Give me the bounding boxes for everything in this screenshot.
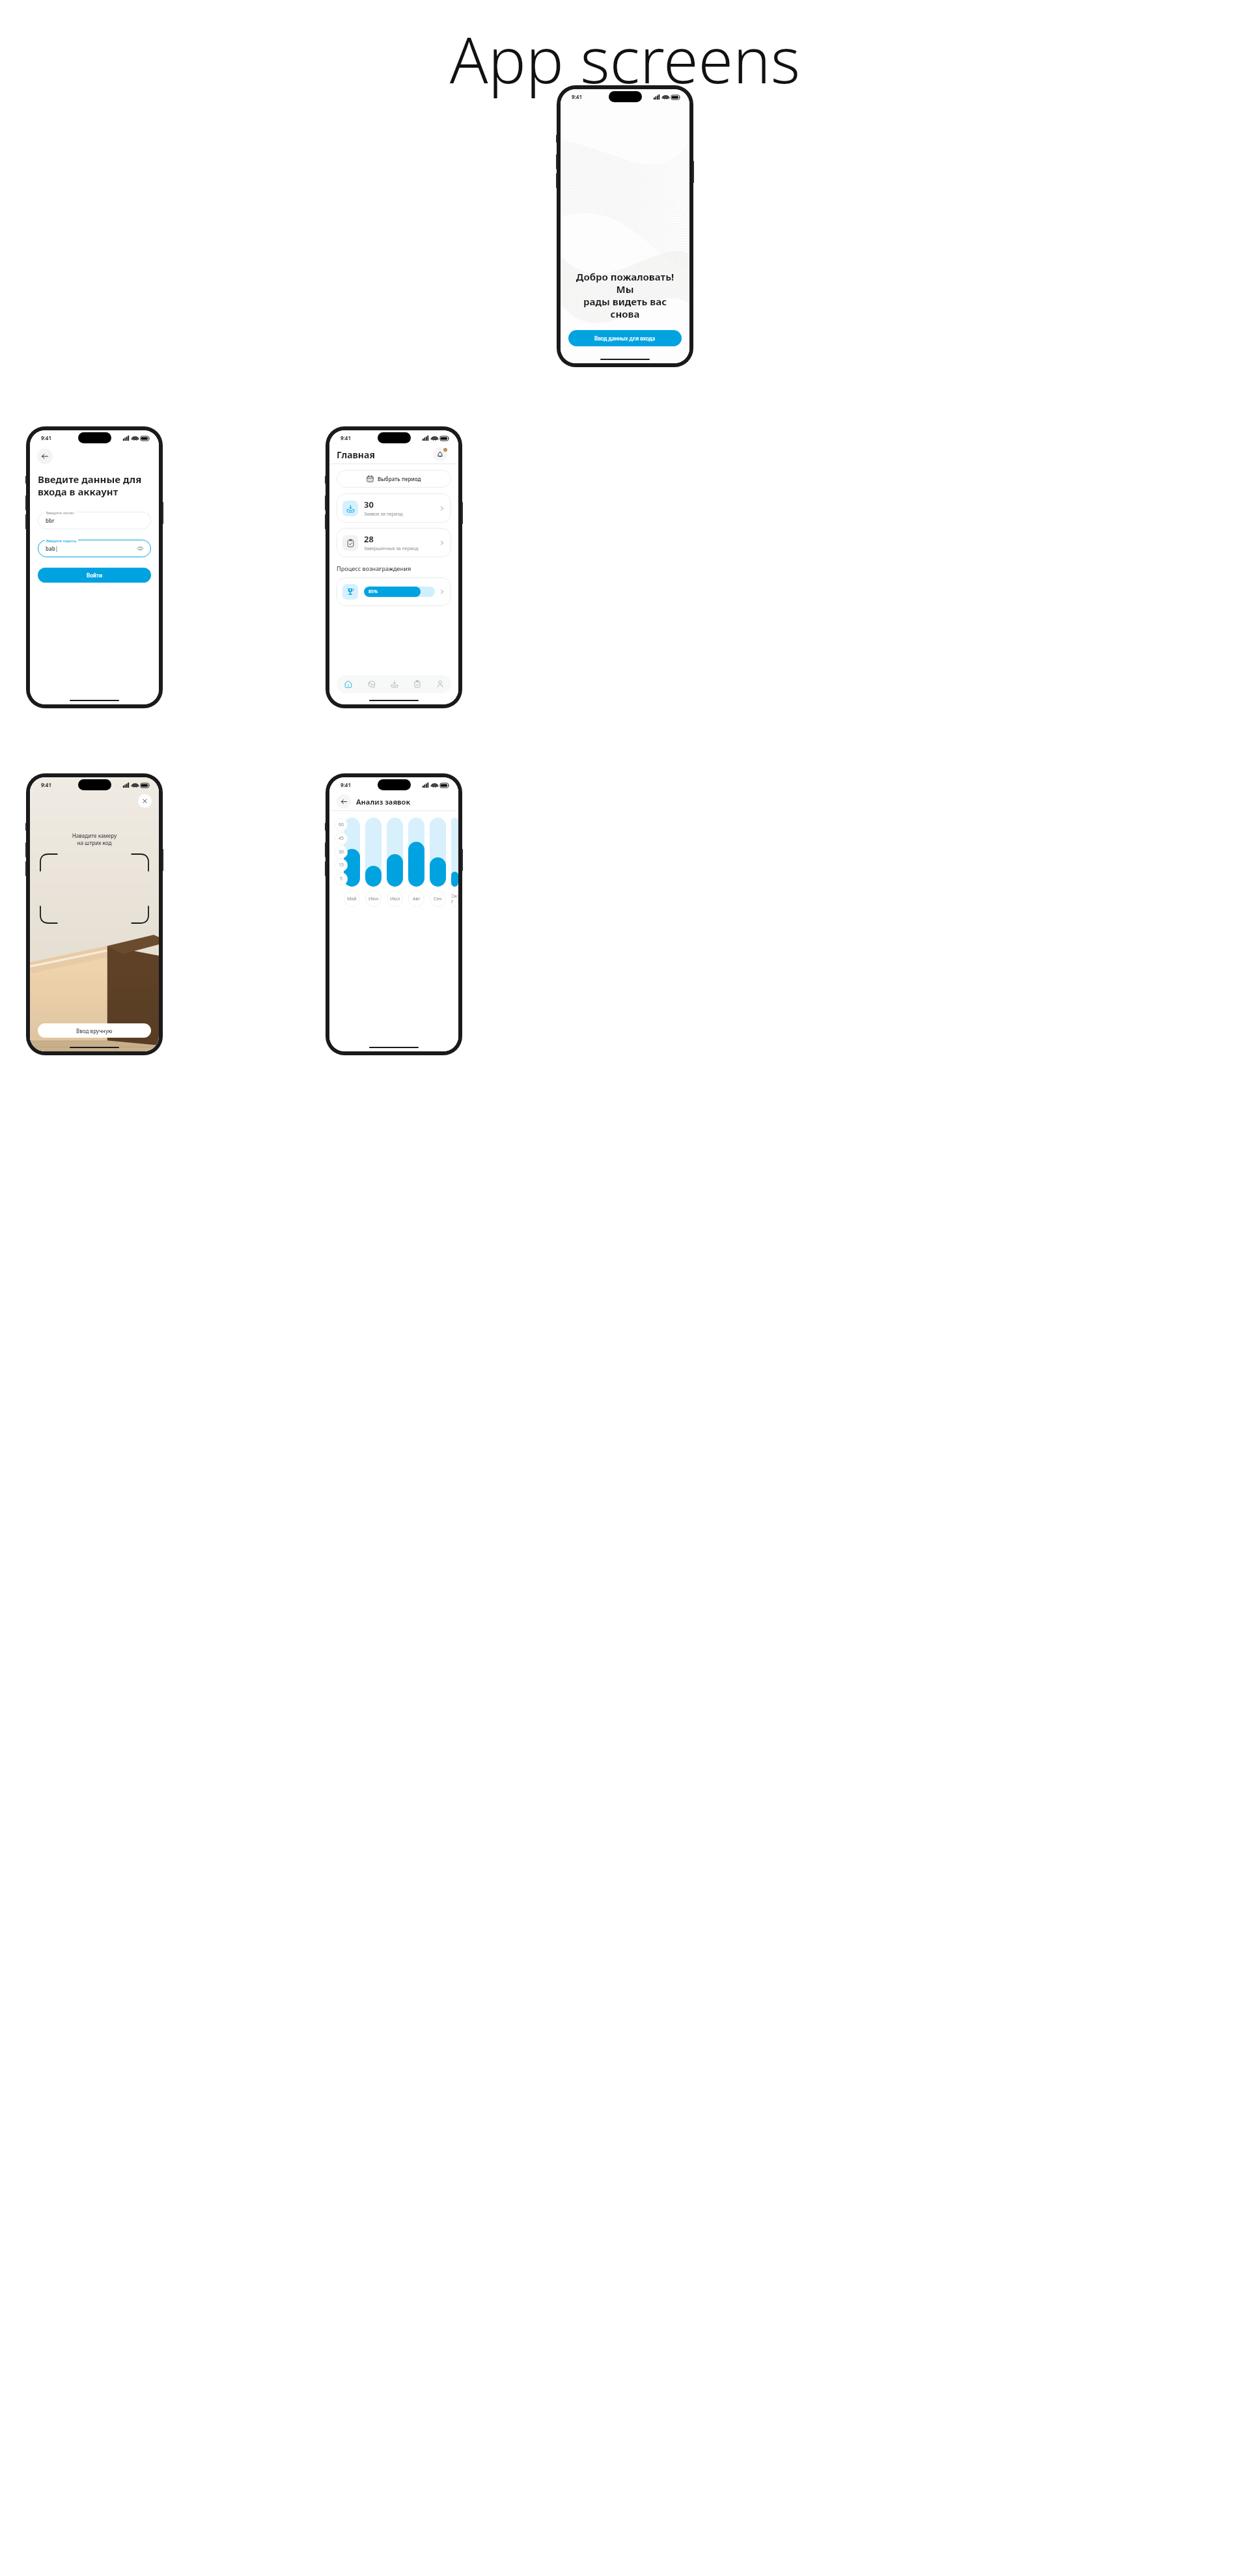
button[interactable]: Назад — [37, 449, 53, 464]
staticText: Авг — [413, 896, 421, 902]
staticText: 9:41 — [572, 93, 582, 100]
staticText: Добро пожаловать! Мы рады видеть вас сно… — [568, 270, 682, 320]
staticText: App screens — [0, 16, 1250, 102]
button[interactable]: bab| — [38, 540, 151, 557]
staticText: 5 — [340, 876, 343, 882]
staticText: Завершенных за период — [364, 546, 419, 552]
staticText: 30 — [339, 849, 344, 855]
button[interactable]: Закрыть — [138, 794, 152, 808]
button[interactable]: 85% — [337, 577, 451, 606]
button[interactable]: Поиск — [360, 675, 383, 693]
button[interactable]: Войти — [38, 568, 151, 583]
button[interactable]: Окт — [451, 891, 458, 907]
button[interactable]: bbr — [38, 512, 151, 529]
staticText: 9:41 — [340, 781, 351, 788]
staticText: Главная — [337, 449, 433, 461]
staticText: Выбрать период — [378, 475, 421, 482]
button[interactable]: Июл — [387, 891, 403, 907]
staticText: Введите логин — [46, 510, 74, 516]
button[interactable]: Май — [344, 891, 360, 907]
staticText: Июн — [368, 896, 379, 902]
staticText: 45 — [339, 835, 344, 842]
staticText: 30 — [364, 499, 374, 510]
staticText: Войти — [87, 572, 103, 579]
staticText: 28 — [364, 533, 374, 545]
staticText: bbr — [46, 517, 55, 524]
staticText: Введите пароль — [46, 538, 77, 544]
button[interactable]: Авг — [408, 891, 424, 907]
button[interactable] — [408, 818, 424, 887]
staticText: Ввод вручную — [76, 1027, 113, 1034]
staticText: Окт — [451, 893, 458, 904]
staticText: 9:41 — [41, 781, 51, 788]
button[interactable]: Ввод вручную — [38, 1023, 151, 1038]
button[interactable]: Задачи — [406, 675, 428, 693]
staticText: 60 — [339, 822, 344, 828]
button[interactable]: Сен — [430, 891, 446, 907]
button[interactable]: Ввод данных для входа — [568, 330, 682, 346]
staticText: Анализ заявок — [356, 797, 411, 807]
staticText: Наведите камеру на штрих код — [30, 832, 159, 847]
staticText: Июл — [390, 896, 400, 902]
button[interactable] — [451, 818, 458, 887]
staticText: 85% — [368, 589, 378, 595]
staticText: Май — [347, 896, 357, 902]
staticText: 9:41 — [41, 434, 51, 441]
button[interactable]: Заявки — [383, 675, 406, 693]
button[interactable]: 28 — [337, 528, 451, 557]
button[interactable]: Выбрать период — [337, 470, 451, 488]
button[interactable]: 30 — [337, 493, 451, 523]
staticText: Процесс вознаграждения — [337, 564, 411, 572]
button[interactable] — [430, 818, 446, 887]
button[interactable]: Назад — [337, 794, 351, 809]
staticText: bab| — [46, 545, 59, 552]
staticText: Ввод данных для входа — [594, 335, 656, 342]
staticText: Заявок за период — [364, 511, 403, 518]
button[interactable]: Уведомления — [433, 447, 447, 462]
staticText: 9:41 — [340, 434, 351, 441]
button[interactable]: Июн — [365, 891, 382, 907]
button[interactable] — [387, 818, 403, 887]
button[interactable]: Показать пароль — [137, 545, 144, 552]
button[interactable]: Главная — [337, 675, 360, 693]
button[interactable]: Профиль — [428, 675, 451, 693]
button[interactable] — [365, 818, 382, 887]
staticText: Сен — [434, 896, 442, 902]
staticText: Введите данные для входа в аккаунт — [38, 473, 142, 498]
button[interactable] — [344, 818, 360, 887]
staticText: 15 — [339, 862, 344, 868]
